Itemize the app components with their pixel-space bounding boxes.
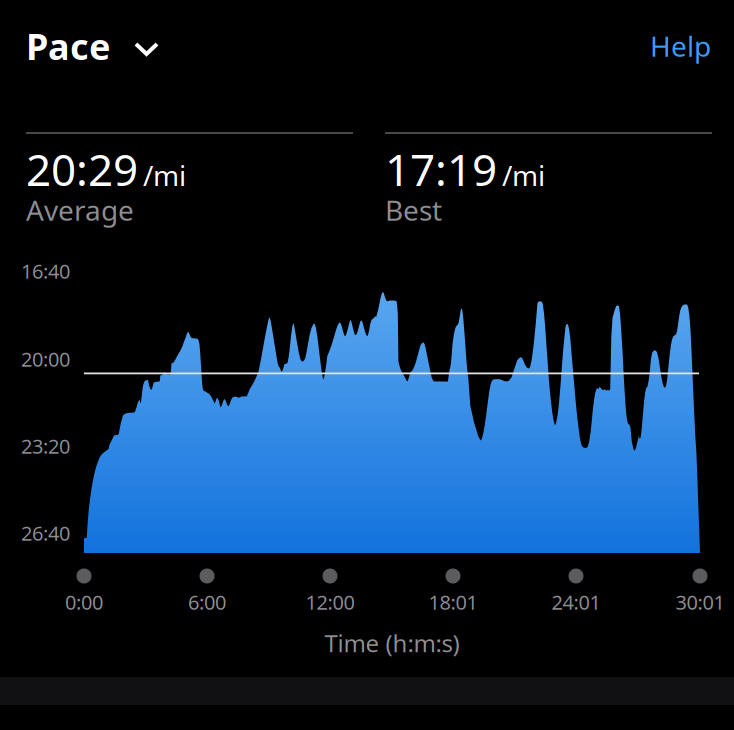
staticText: /mi: [143, 157, 186, 194]
staticText: 17:19: [385, 140, 497, 198]
staticText: Pace: [26, 22, 110, 70]
staticText: 30:01: [675, 589, 724, 615]
staticText: 26:40: [21, 520, 70, 546]
staticText: 20:29: [26, 140, 138, 198]
staticText: 24:01: [551, 589, 600, 615]
staticText: /mi: [502, 157, 545, 194]
staticText: 0:00: [65, 589, 103, 615]
staticText: Average: [26, 191, 134, 229]
staticText: Time (h:m:s): [324, 627, 459, 659]
staticText: 23:20: [21, 433, 70, 459]
staticText: 18:01: [428, 589, 477, 615]
staticText: Help: [650, 27, 711, 65]
staticText: 20:00: [21, 346, 70, 372]
button[interactable]: Pace: [26, 22, 176, 70]
staticText: Best: [385, 191, 442, 229]
staticText: 6:00: [188, 589, 226, 615]
staticText: 12:00: [305, 589, 354, 615]
staticText: 16:40: [21, 258, 70, 284]
button[interactable]: Help: [621, 22, 711, 70]
